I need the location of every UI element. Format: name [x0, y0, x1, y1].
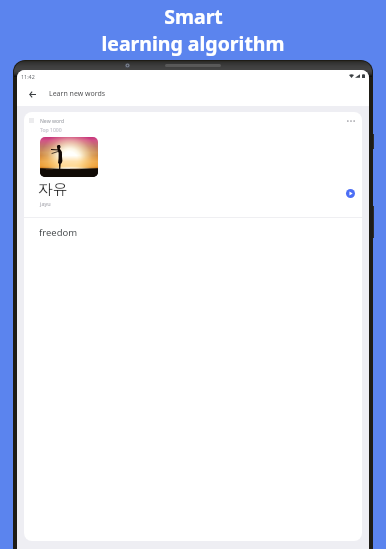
staticText: Top 1000: [40, 127, 62, 134]
staticText: 11:42: [21, 73, 35, 80]
staticText: New word: [40, 118, 65, 125]
staticText: 자유: [38, 180, 68, 199]
staticText: Learn new words: [49, 89, 106, 99]
staticText: Smart: [164, 3, 223, 30]
staticText: freedom: [39, 226, 78, 239]
button[interactable]: More options: [340, 112, 361, 129]
button[interactable]: Back: [23, 85, 41, 103]
staticText: learning algorithm: [101, 30, 285, 57]
staticText: jayu: [40, 200, 51, 207]
button[interactable]: Play pronunciation: [340, 183, 361, 204]
